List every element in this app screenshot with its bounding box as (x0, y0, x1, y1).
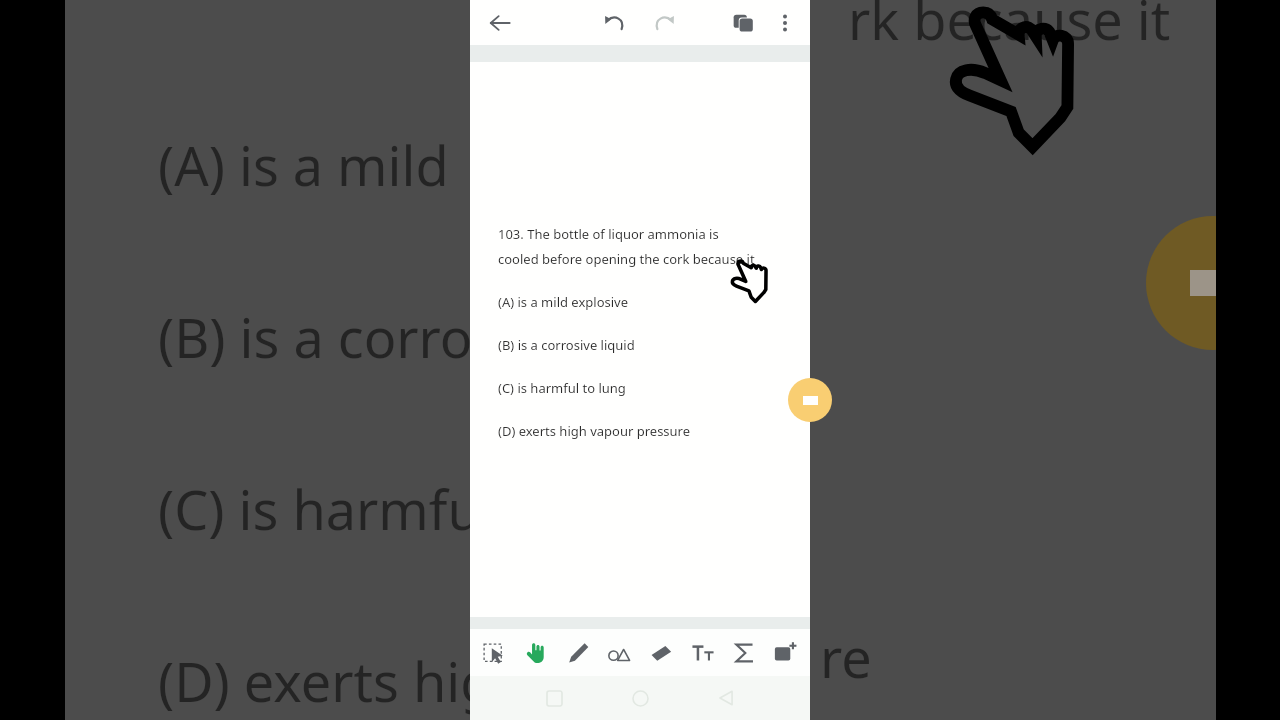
staticText: (D) exerts high vapour pressure (498, 422, 691, 440)
staticText: (C) is harmfu (158, 472, 481, 546)
staticText: rk because it (848, 0, 1171, 56)
button[interactable]: Eraser (642, 629, 680, 676)
button[interactable]: Home (618, 676, 662, 720)
button[interactable]: Text (684, 629, 722, 676)
button[interactable]: Select (475, 629, 513, 676)
staticText: cooled before opening the cork because i… (498, 250, 755, 268)
button[interactable]: Shapes (600, 629, 638, 676)
button[interactable]: Back (480, 0, 520, 45)
button[interactable]: Insert image (766, 629, 804, 676)
other: Pointer (727, 258, 775, 306)
staticText: (B) is a corro (158, 300, 473, 374)
button[interactable]: Back (704, 676, 748, 720)
button[interactable]: Redo (644, 0, 684, 45)
staticText: 103. The bottle of liquor ammonia is (498, 225, 719, 243)
button[interactable]: More options (765, 3, 805, 43)
button[interactable]: Pen (559, 629, 597, 676)
staticText: (C) is harmful to lung (498, 379, 626, 397)
button[interactable]: Pages (724, 0, 764, 45)
button[interactable]: Pan (517, 629, 555, 676)
button[interactable]: Undo (595, 0, 635, 45)
button[interactable]: Formula (725, 629, 763, 676)
staticText: (A) is a mild (158, 128, 449, 202)
staticText: (B) is a corrosive liquid (498, 336, 635, 354)
staticText: (A) is a mild explosive (498, 293, 629, 311)
button[interactable]: Action button (788, 378, 832, 422)
button[interactable]: Recents (532, 676, 576, 720)
staticText: (D) exerts hig (158, 644, 494, 718)
staticText: re (820, 620, 872, 694)
